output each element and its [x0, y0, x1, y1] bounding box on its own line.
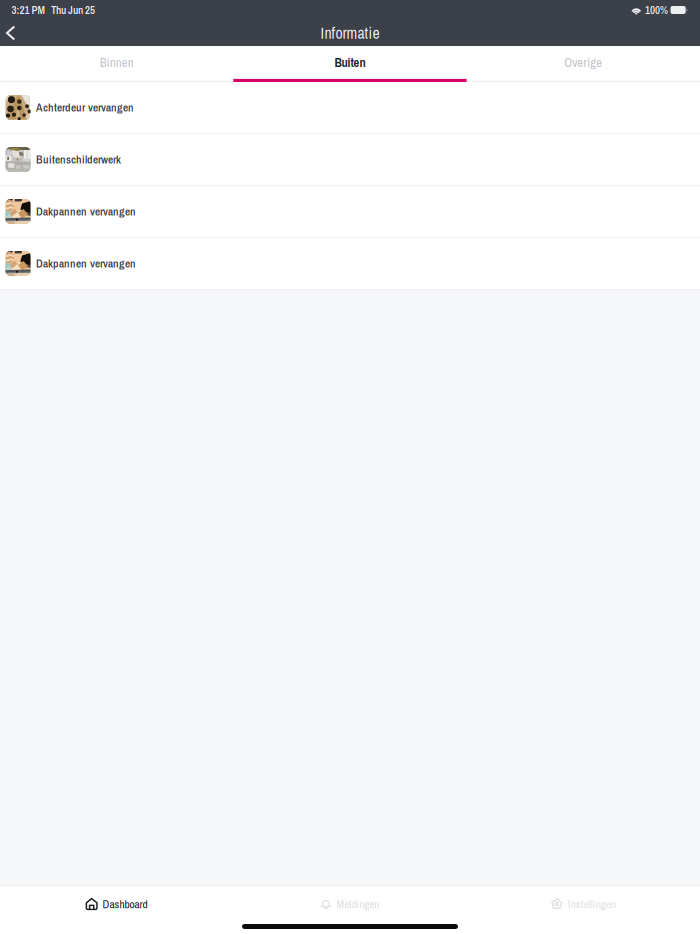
button[interactable]: Dakpannen vervangen	[0, 185, 700, 237]
button[interactable]: Dakpannen vervangen	[0, 237, 700, 289]
staticText: 100%	[645, 3, 668, 17]
staticText: Binnen	[100, 54, 134, 71]
staticText: 3:21 PM	[11, 3, 44, 17]
staticText: Buiten	[334, 54, 365, 71]
staticText: Buitenschilderwerk	[36, 152, 121, 167]
staticText: Dakpannen vervangen	[36, 204, 136, 219]
button[interactable]: Achterdeur vervangen	[0, 82, 700, 133]
button[interactable]: Dashboard	[0, 886, 233, 922]
button[interactable]: Meldingen	[233, 886, 467, 922]
staticText: Informatie	[320, 22, 379, 44]
staticText: Dakpannen vervangen	[36, 256, 136, 271]
staticText: Achterdeur vervangen	[36, 100, 134, 115]
staticText: Dashboard	[102, 896, 147, 912]
button[interactable]: Back	[0, 21, 25, 44]
button[interactable]: Buitenschilderwerk	[0, 133, 700, 185]
button[interactable]: Overige	[467, 46, 700, 82]
staticText: Meldingen	[336, 896, 379, 912]
button[interactable]: Binnen	[0, 46, 233, 82]
button[interactable]: Instellingen	[467, 886, 700, 922]
staticText: Overige	[564, 54, 602, 71]
button[interactable]: Buiten	[233, 46, 467, 82]
staticText: Instellingen	[568, 896, 616, 912]
staticText: Thu Jun 25	[51, 3, 95, 17]
